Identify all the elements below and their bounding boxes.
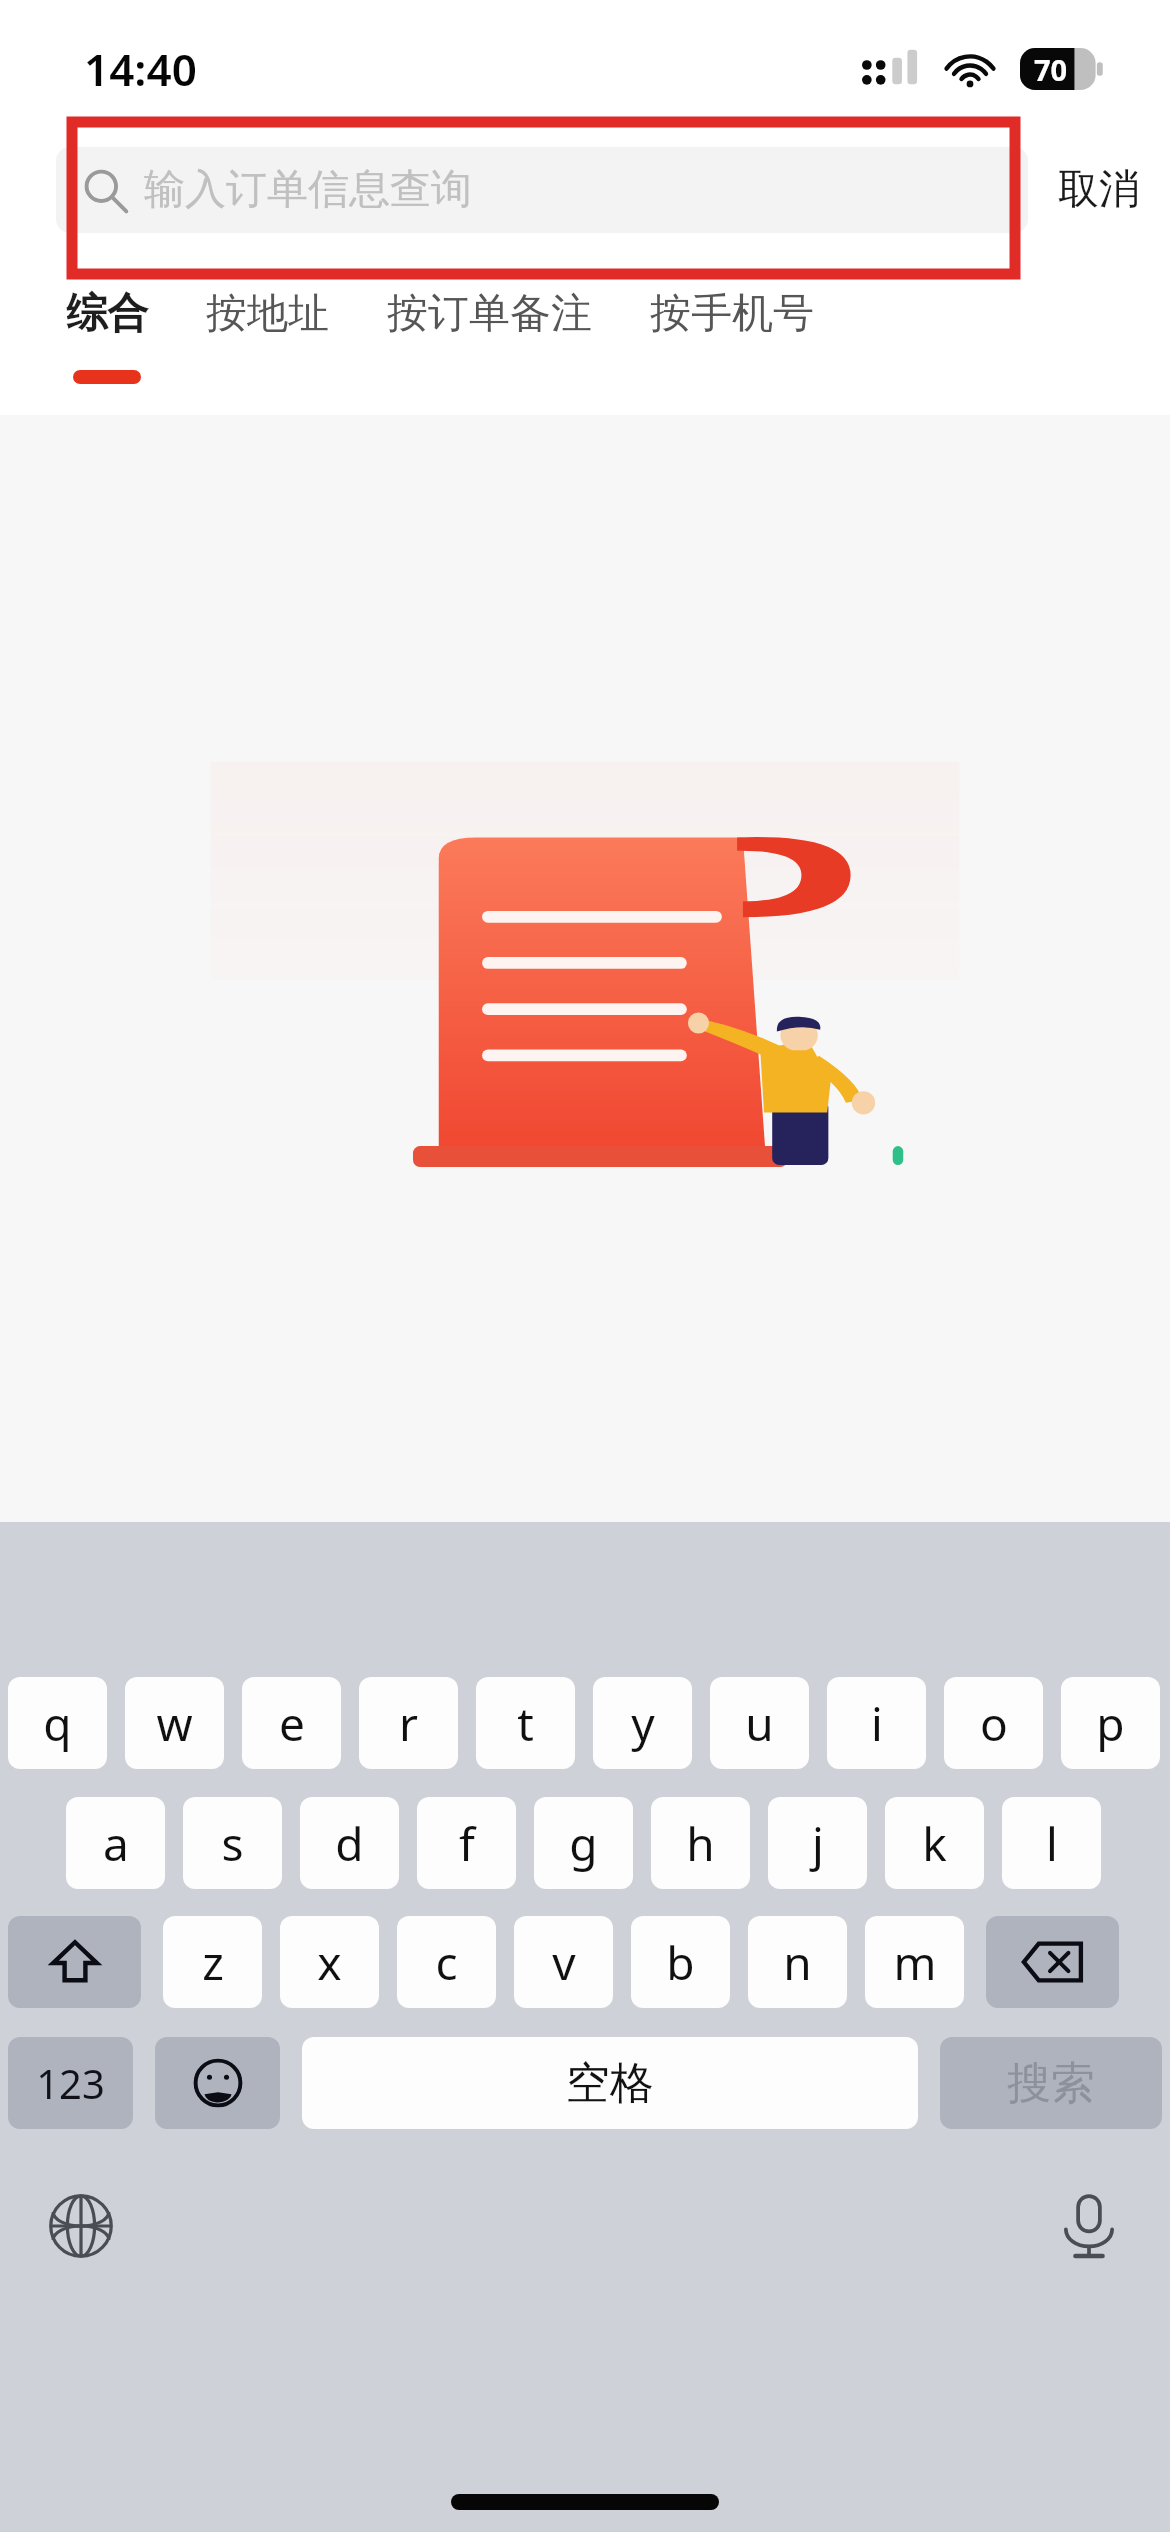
staticText: w [156,1692,193,1755]
button[interactable]: Shift [8,1916,141,2008]
button[interactable]: l [1002,1797,1101,1889]
button[interactable]: 搜索 [940,2037,1162,2129]
button[interactable]: o [944,1677,1043,1769]
staticText: p [1096,1692,1125,1755]
button[interactable]: Emoji [155,2037,280,2129]
staticText: f [459,1812,475,1875]
staticText: i [871,1692,883,1755]
button[interactable]: h [651,1797,750,1889]
staticText: 14:40 [84,39,197,99]
button[interactable]: b [631,1916,730,2008]
button[interactable]: t [476,1677,575,1769]
staticText: l [1046,1812,1058,1875]
button[interactable]: i [827,1677,926,1769]
button[interactable]: x [280,1916,379,2008]
staticText: q [43,1692,72,1755]
staticText: c [435,1931,458,1994]
button[interactable]: g [534,1797,633,1889]
staticText: d [335,1812,364,1875]
staticText: j [812,1812,824,1875]
button[interactable]: n [748,1916,847,2008]
staticText: t [517,1692,534,1755]
button[interactable]: c [397,1916,496,2008]
staticText: o [980,1692,1008,1755]
staticText: s [221,1812,244,1875]
staticText: 取消 [1058,164,1140,216]
button[interactable]: Voice input [1034,2171,1144,2281]
staticText: g [569,1812,598,1875]
button[interactable]: 按手机号 [650,252,814,415]
staticText: 70 [1034,50,1068,89]
staticText: u [745,1692,774,1755]
button[interactable]: p [1061,1677,1160,1769]
button[interactable]: 按订单备注 [387,252,592,415]
button[interactable]: 输入订单信息查询 [56,147,1028,233]
staticText: r [399,1692,418,1755]
staticText: z [202,1931,224,1994]
button[interactable]: Switch keyboard language [26,2171,136,2281]
staticText: 搜索 [1007,2056,1095,2111]
button[interactable]: j [768,1797,867,1889]
button[interactable]: 按地址 [206,252,329,415]
button[interactable]: q [8,1677,107,1769]
button[interactable]: 取消 [1028,128,1170,252]
button[interactable]: k [885,1797,984,1889]
staticText: 输入订单信息查询 [144,164,472,216]
staticText: n [783,1931,812,1994]
button[interactable]: 综合 [66,252,148,415]
staticText: 空格 [566,2056,654,2111]
staticText: v [552,1931,576,1994]
staticText: 123 [36,2056,105,2110]
button[interactable]: y [593,1677,692,1769]
button[interactable]: z [163,1916,262,2008]
staticText: m [893,1931,937,1994]
button[interactable]: e [242,1677,341,1769]
button[interactable]: m [865,1916,964,2008]
button[interactable]: a [66,1797,165,1889]
button[interactable]: 空格 [302,2037,918,2129]
staticText: k [922,1812,947,1875]
button[interactable]: d [300,1797,399,1889]
staticText: 按订单备注 [387,288,592,340]
staticText: 综合 [66,288,148,340]
button[interactable]: v [514,1916,613,2008]
button[interactable]: 123 [8,2037,133,2129]
button[interactable]: r [359,1677,458,1769]
button[interactable]: w [125,1677,224,1769]
button[interactable]: s [183,1797,282,1889]
button[interactable]: Backspace [986,1916,1119,2008]
button[interactable]: f [417,1797,516,1889]
staticText: y [631,1692,655,1755]
button[interactable]: u [710,1677,809,1769]
staticText: 按手机号 [650,288,814,340]
staticText: e [279,1692,305,1755]
staticText: b [666,1931,695,1994]
staticText: x [317,1931,342,1994]
staticText: 按地址 [206,288,329,340]
staticText: a [103,1812,129,1875]
staticText: h [686,1812,715,1875]
